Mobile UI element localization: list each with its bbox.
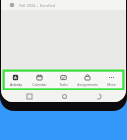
button[interactable]: Assignments: [75, 72, 99, 88]
button[interactable]: Back: [91, 90, 105, 102]
button[interactable]: Home: [57, 90, 71, 102]
staticText: More: [107, 82, 116, 87]
button[interactable]: Activity: [4, 72, 27, 88]
staticText: Assignments: [77, 82, 98, 87]
button[interactable]: More: [99, 72, 123, 88]
staticText: Activity: [10, 82, 22, 87]
button[interactable]: Tasks: [51, 72, 75, 88]
staticText: Calendar: [32, 82, 47, 87]
staticText: Fall 2024 – Enrolled: [19, 3, 56, 8]
button[interactable]: Recent apps: [22, 90, 36, 102]
button[interactable]: Calendar: [27, 72, 51, 88]
staticText: Tasks: [59, 82, 68, 87]
